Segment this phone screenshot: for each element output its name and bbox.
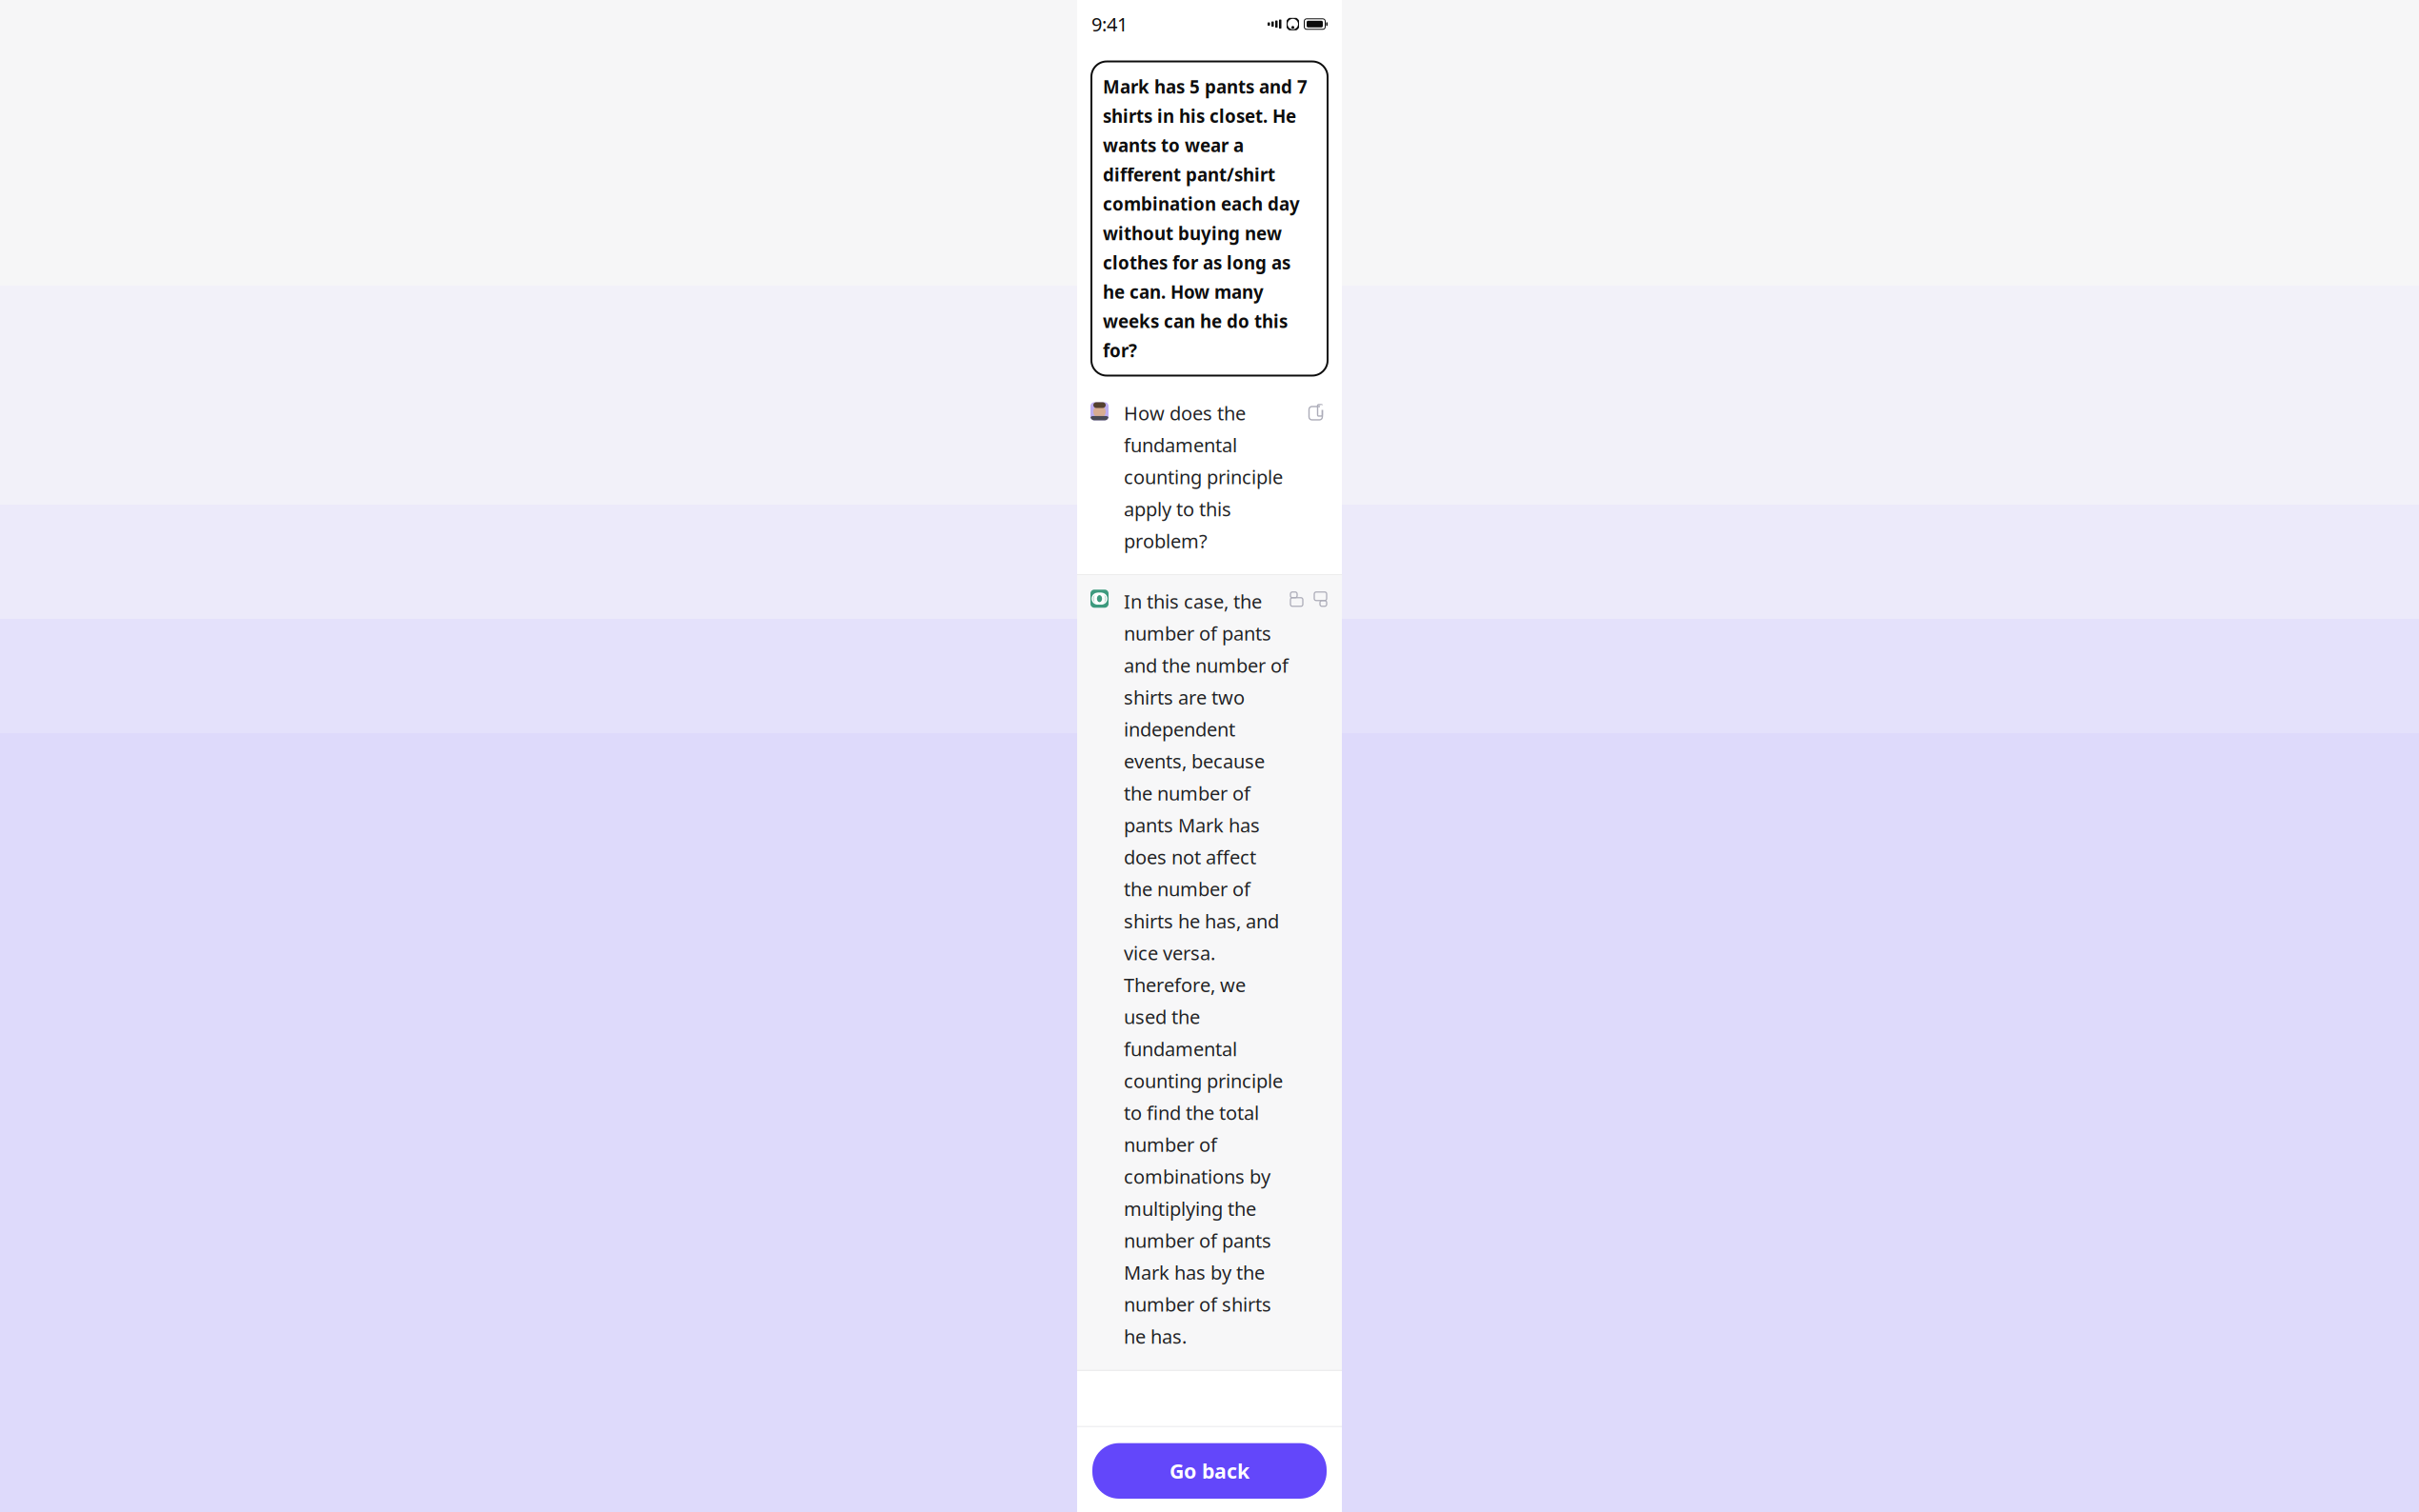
button[interactable]: Good response	[1289, 591, 1305, 608]
staticText: Go back	[1170, 1457, 1249, 1484]
button[interactable]: Go back	[1092, 1443, 1327, 1499]
staticText: Mark has 5 pants and 7 shirts in his clo…	[1103, 75, 1308, 362]
button[interactable]: Edit message	[1306, 400, 1329, 423]
staticText: How does the fundamental counting princi…	[1124, 400, 1283, 553]
button[interactable]: Bad response	[1312, 591, 1329, 608]
staticText: 9:41	[1091, 11, 1128, 37]
staticText: In this case, the number of pants and th…	[1124, 589, 1289, 1349]
